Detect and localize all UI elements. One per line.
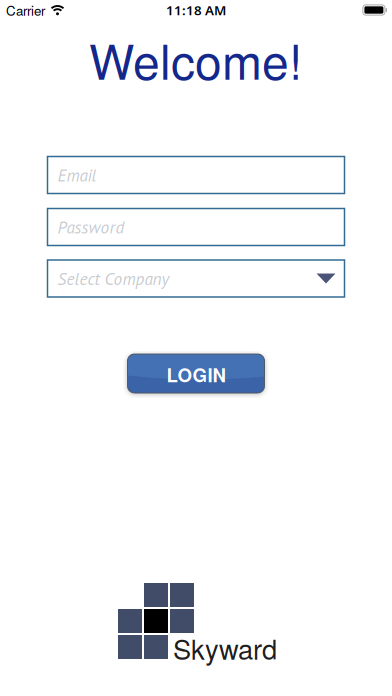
staticText: Email bbox=[57, 164, 96, 186]
staticText: LOGIN bbox=[166, 361, 225, 388]
staticText: Welcome! bbox=[89, 25, 302, 93]
button[interactable]: Email bbox=[47, 156, 344, 193]
staticText: Carrier bbox=[6, 0, 45, 20]
staticText: Password bbox=[57, 216, 124, 238]
staticText: Skyward bbox=[173, 628, 277, 667]
staticText: 11:18 AM bbox=[166, 1, 226, 19]
button[interactable]: Password bbox=[47, 208, 344, 245]
button[interactable]: LOGIN bbox=[127, 354, 264, 393]
staticText: Select Company bbox=[57, 267, 169, 290]
button[interactable]: Select Company bbox=[47, 260, 344, 297]
